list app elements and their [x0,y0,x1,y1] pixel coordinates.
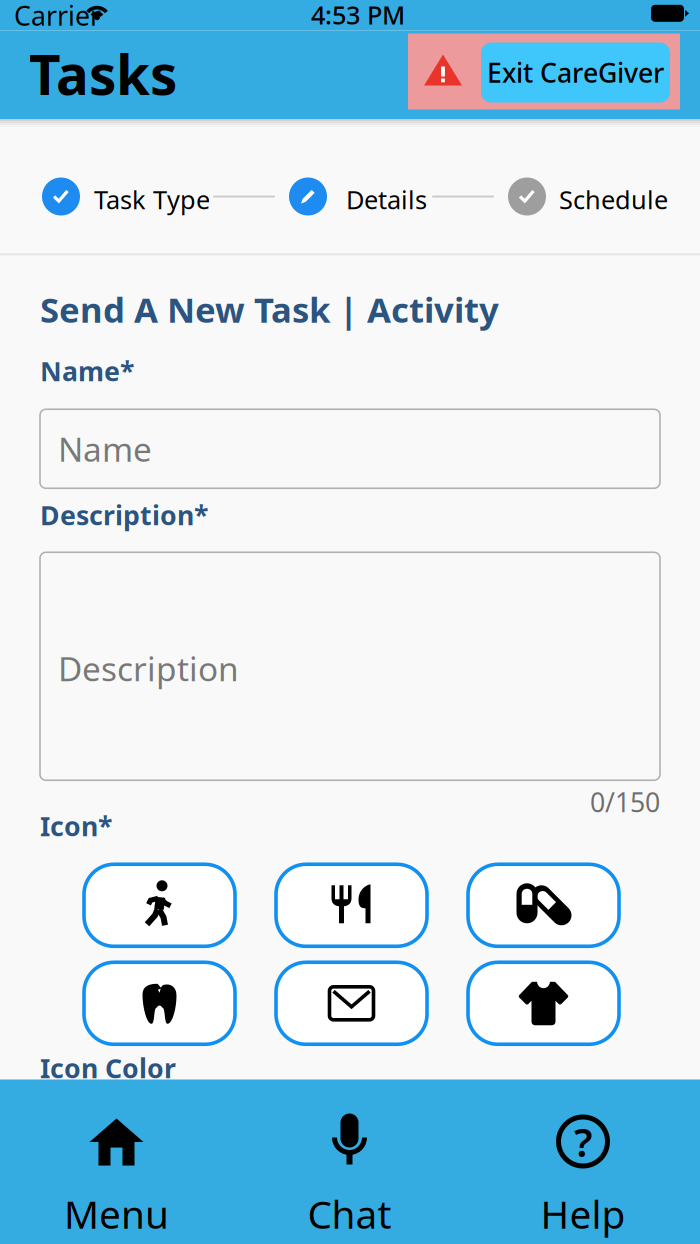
button[interactable]: Clothing [468,962,619,1044]
staticText: Tasks [29,37,177,110]
staticText: Send A New Task | Activity [40,286,499,332]
staticText: Menu [64,1188,169,1239]
button[interactable]: Menu [0,1079,233,1244]
staticText: Help [540,1188,625,1239]
staticText: Description* [40,497,208,533]
staticText: Name* [40,353,134,389]
staticText: 4:53 PM [311,0,405,31]
button[interactable]: ? [466,1079,700,1244]
staticText: Exit CareGiver [487,55,664,90]
staticText: Carrier [14,0,101,33]
button[interactable]: Dental [84,962,235,1044]
staticText: Icon Color [40,1050,176,1086]
staticText: 0/150 [590,784,660,820]
button[interactable]: Chat [233,1079,466,1244]
staticText: Schedule [559,182,668,216]
staticText: Details [346,182,427,216]
staticText: Description [58,646,239,691]
staticText: Chat [307,1188,391,1239]
button[interactable]: Mail [276,962,427,1044]
button[interactable]: Walking [84,864,235,946]
staticText: Icon* [40,808,112,844]
button[interactable]: Exit CareGiver [481,42,670,102]
staticText: Name [58,427,152,471]
staticText: ? [574,1115,592,1168]
button[interactable]: Medication [468,864,619,946]
staticText: Task Type [94,182,210,216]
button[interactable]: Meal [276,864,427,946]
